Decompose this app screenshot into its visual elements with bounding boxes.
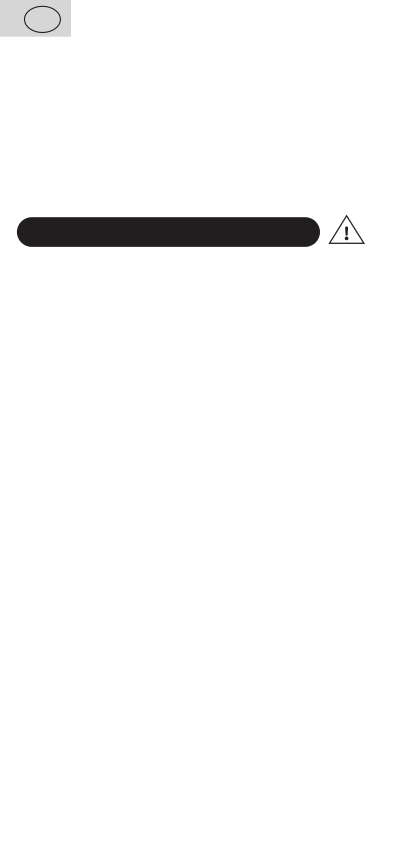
button[interactable]: Action — [17, 217, 320, 247]
button[interactable]: Ellipse — [0, 0, 71, 37]
button[interactable]: Warning — [329, 215, 364, 244]
